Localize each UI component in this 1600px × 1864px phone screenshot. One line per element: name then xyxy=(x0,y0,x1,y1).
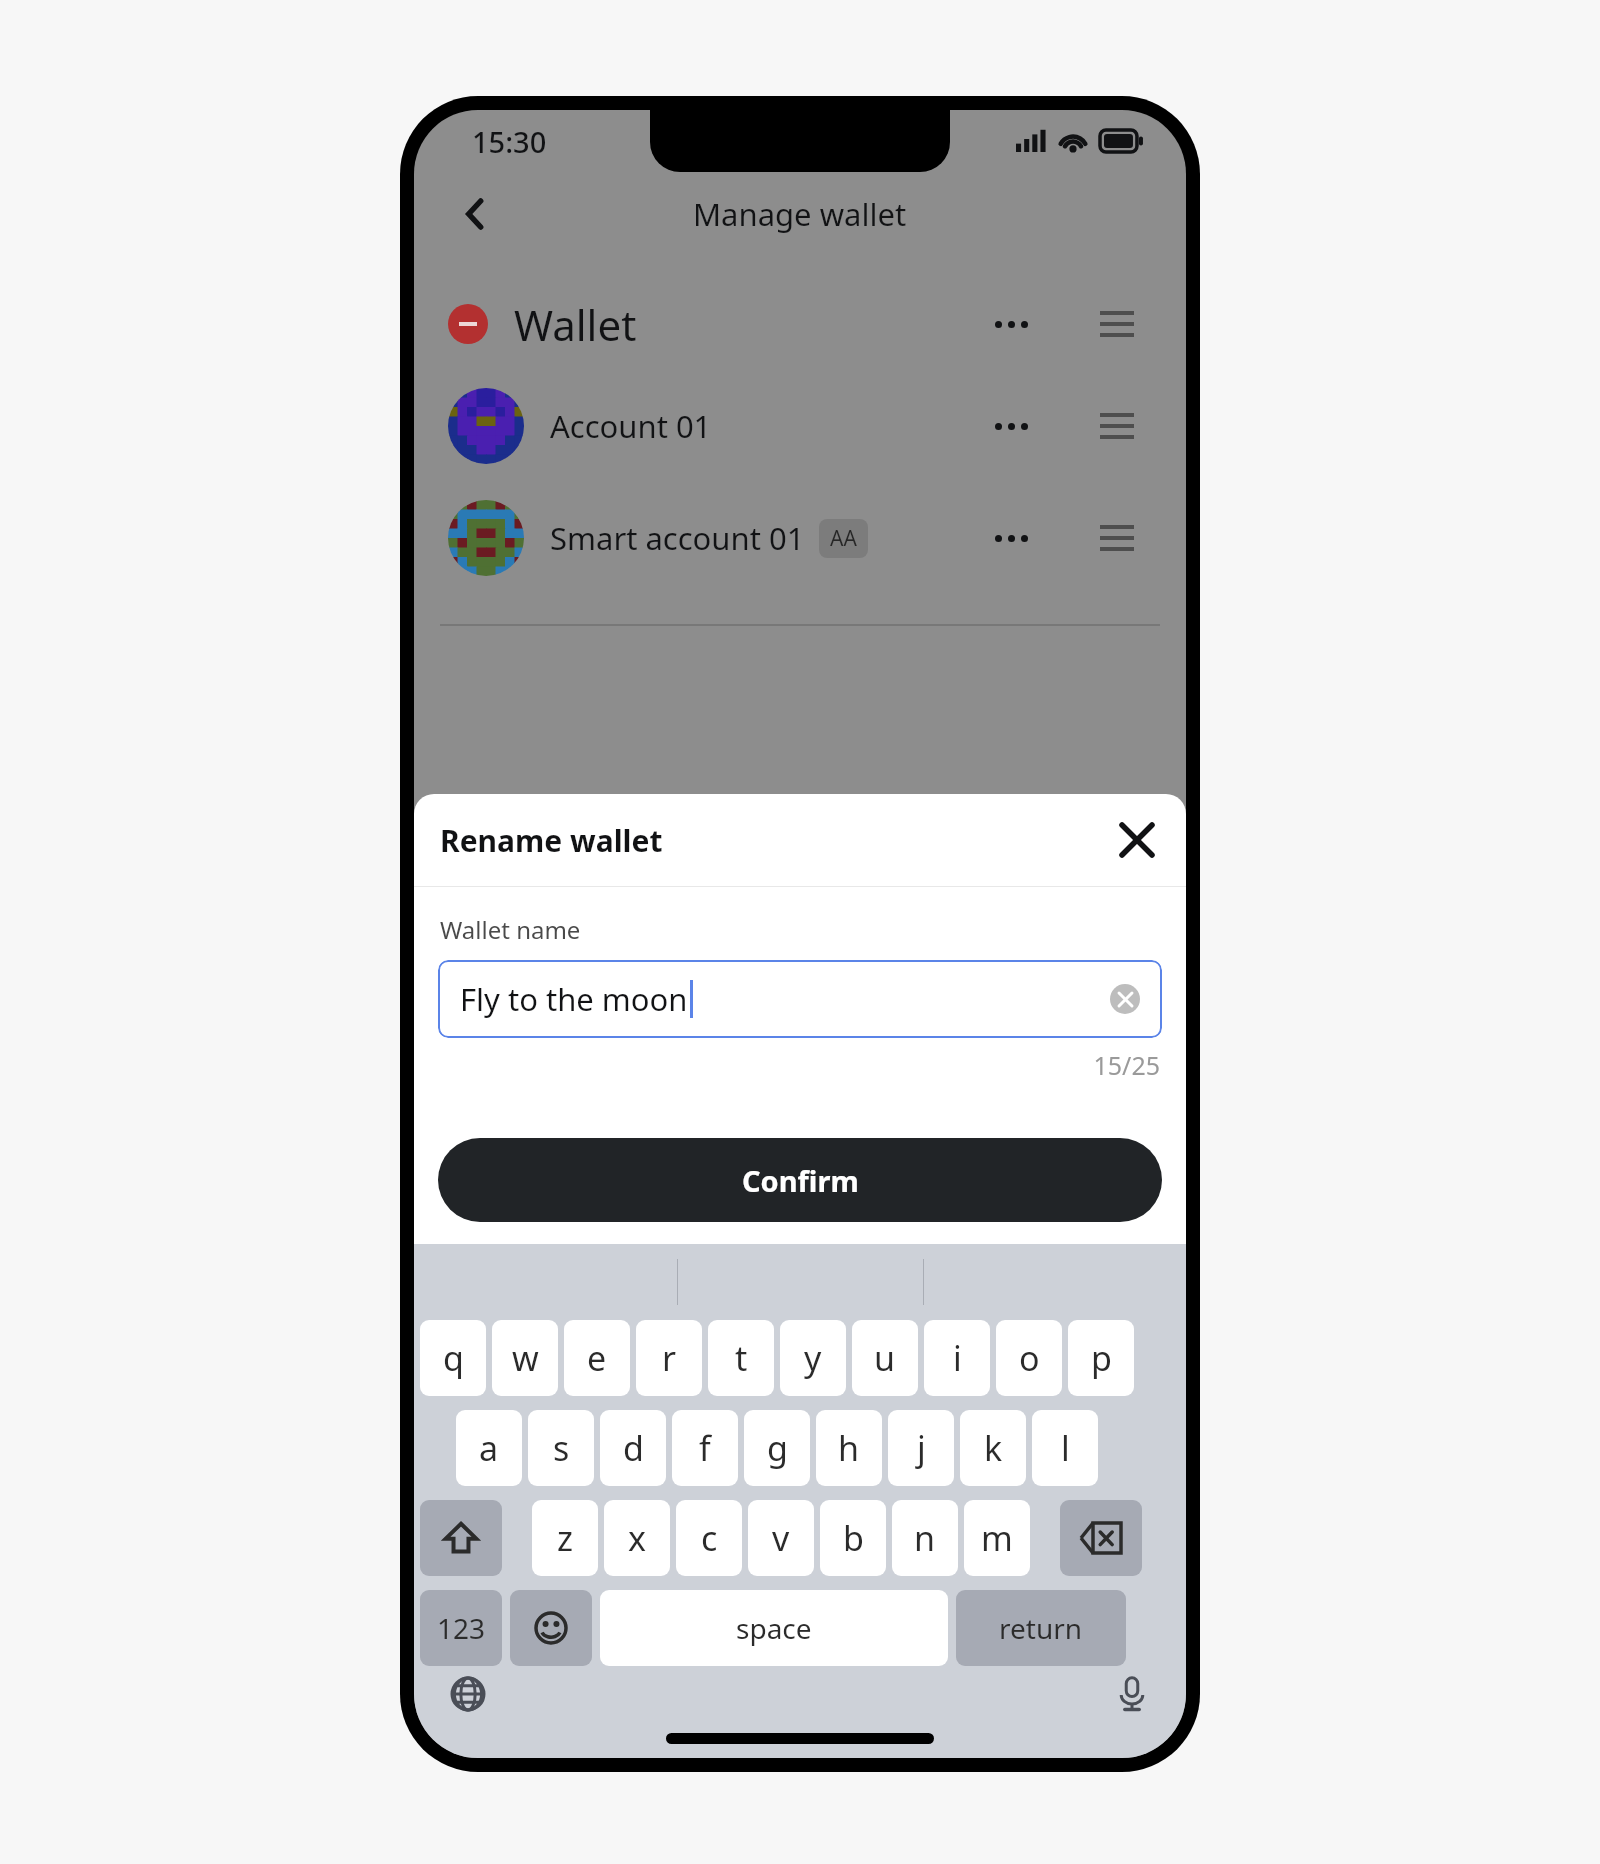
button[interactable]: Change keyboard xyxy=(444,1670,492,1718)
button[interactable]: e xyxy=(564,1320,630,1396)
button[interactable]: a xyxy=(456,1410,522,1486)
button[interactable]: q xyxy=(420,1320,486,1396)
staticText: w xyxy=(512,1335,539,1381)
staticText: i xyxy=(953,1335,962,1381)
button[interactable]: return xyxy=(956,1590,1126,1666)
button[interactable]: g xyxy=(744,1410,810,1486)
staticText: AA xyxy=(830,524,857,553)
button[interactable]: Fly to the moon xyxy=(438,960,1162,1038)
staticText: h xyxy=(838,1425,860,1471)
button[interactable]: d xyxy=(600,1410,666,1486)
staticText: Rename wallet xyxy=(440,820,663,861)
button[interactable]: c xyxy=(676,1500,742,1576)
staticText: r xyxy=(662,1335,677,1381)
staticText: Wallet xyxy=(514,296,637,353)
button[interactable]: h xyxy=(816,1410,882,1486)
button[interactable]: Wallet xyxy=(414,278,1186,370)
button[interactable]: j xyxy=(888,1410,954,1486)
staticText: Fly to the moon xyxy=(460,978,688,1020)
button[interactable]: Back xyxy=(448,186,504,242)
staticText: n xyxy=(914,1515,936,1561)
staticText: 15/25 xyxy=(414,1048,1160,1082)
staticText: l xyxy=(1061,1425,1070,1471)
staticText: Wallet name xyxy=(440,913,581,946)
staticText: e xyxy=(587,1335,607,1381)
button[interactable]: s xyxy=(528,1410,594,1486)
staticText: a xyxy=(479,1425,499,1471)
button[interactable]: space xyxy=(600,1590,948,1666)
staticText: z xyxy=(557,1515,573,1561)
button[interactable]: More options xyxy=(982,397,1040,455)
staticText: Smart account 01 xyxy=(550,517,805,559)
button[interactable]: Confirm xyxy=(438,1138,1162,1222)
staticText: c xyxy=(701,1515,718,1561)
button[interactable]: 123 xyxy=(420,1590,502,1666)
button[interactable]: m xyxy=(964,1500,1030,1576)
button[interactable]: i xyxy=(924,1320,990,1396)
button[interactable]: p xyxy=(1068,1320,1134,1396)
staticText: 15:30 xyxy=(472,122,547,161)
button[interactable]: t xyxy=(708,1320,774,1396)
button[interactable]: Close xyxy=(1110,813,1164,867)
button[interactable]: y xyxy=(780,1320,846,1396)
staticText: y xyxy=(804,1335,822,1381)
staticText: f xyxy=(699,1425,711,1471)
button[interactable]: Emoji xyxy=(510,1590,592,1666)
staticText: b xyxy=(843,1515,864,1561)
staticText: u xyxy=(874,1335,896,1381)
staticText: o xyxy=(1019,1335,1040,1381)
button[interactable]: u xyxy=(852,1320,918,1396)
staticText: x xyxy=(628,1515,646,1561)
button[interactable]: Shift xyxy=(420,1500,502,1576)
button[interactable]: More options xyxy=(982,295,1040,353)
button[interactable]: n xyxy=(892,1500,958,1576)
button[interactable]: x xyxy=(604,1500,670,1576)
staticText: Confirm xyxy=(742,1161,859,1200)
staticText: s xyxy=(553,1425,570,1471)
button[interactable]: b xyxy=(820,1500,886,1576)
staticText: Account 01 xyxy=(550,405,712,447)
button[interactable]: l xyxy=(1032,1410,1098,1486)
staticText: return xyxy=(999,1609,1083,1647)
staticText: space xyxy=(736,1609,812,1647)
button[interactable]: o xyxy=(996,1320,1062,1396)
button[interactable]: k xyxy=(960,1410,1026,1486)
button[interactable]: z xyxy=(532,1500,598,1576)
button[interactable]: Smart account 01 xyxy=(414,482,1186,594)
staticText: k xyxy=(984,1425,1003,1471)
staticText: q xyxy=(443,1335,464,1381)
button[interactable]: Account 01 xyxy=(414,370,1186,482)
staticText: 123 xyxy=(437,1609,486,1647)
button[interactable]: Backspace xyxy=(1060,1500,1142,1576)
button[interactable]: More options xyxy=(982,509,1040,567)
staticText: j xyxy=(917,1425,926,1471)
button[interactable]: Reorder xyxy=(1088,509,1146,567)
staticText: v xyxy=(772,1515,790,1561)
staticText: Manage wallet xyxy=(693,193,907,235)
button[interactable]: Reorder xyxy=(1088,295,1146,353)
button[interactable]: v xyxy=(748,1500,814,1576)
button[interactable]: Voice input xyxy=(1108,1670,1156,1718)
button[interactable]: Clear xyxy=(1110,984,1140,1014)
button[interactable]: Reorder xyxy=(1088,397,1146,455)
staticText: p xyxy=(1091,1335,1112,1381)
staticText: d xyxy=(623,1425,644,1471)
staticText: g xyxy=(767,1425,788,1471)
button[interactable]: w xyxy=(492,1320,558,1396)
button[interactable]: f xyxy=(672,1410,738,1486)
staticText: m xyxy=(981,1515,1013,1561)
button[interactable]: r xyxy=(636,1320,702,1396)
staticText: t xyxy=(735,1335,748,1381)
